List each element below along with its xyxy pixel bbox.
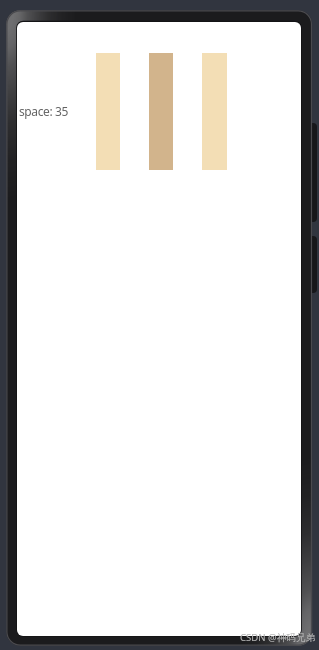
- staticText: CSDN @神码兄弟: [240, 631, 316, 644]
- staticText: space: 35: [19, 103, 68, 119]
